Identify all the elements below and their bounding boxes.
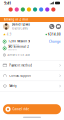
staticText: 4.9 [7, 33, 12, 36]
staticText: $314.00 [48, 33, 61, 36]
staticText: San Francisco [8, 43, 19, 45]
button[interactable]: Nearby [38, 6, 44, 13]
staticText: 9:41 [4, 0, 11, 6]
staticText: Payment method [9, 64, 32, 67]
button[interactable]: Contact support [0, 71, 64, 81]
staticText: 1280 Mission St [8, 39, 30, 43]
button[interactable]: Saved [26, 6, 32, 13]
button[interactable]: Favourites [14, 6, 20, 13]
button[interactable]: Safety [0, 81, 64, 91]
button[interactable]: Payment method [0, 60, 64, 70]
staticText: Change [49, 40, 61, 43]
button[interactable]: Change [49, 40, 61, 43]
staticText: Daniel Lewis [12, 23, 30, 26]
staticText: Arrives 9:58 AM [7, 53, 29, 57]
staticText: Departures [8, 49, 17, 50]
staticText: Cancel ride [12, 107, 29, 111]
button[interactable]: Call driver [49, 24, 54, 29]
staticText: Toyota Camry [12, 27, 28, 30]
staticText: SFO Terminal 2 [8, 45, 29, 48]
button[interactable]: Home [8, 6, 14, 13]
button[interactable]: Cancel ride [3, 104, 61, 114]
button[interactable]: Recent [32, 6, 38, 13]
button[interactable]: Airport [50, 6, 56, 13]
staticText: Contact support [9, 74, 31, 77]
staticText: Safety [9, 84, 16, 88]
button[interactable]: More [44, 6, 50, 13]
staticText: Arriving in 2 min [3, 18, 28, 21]
button[interactable]: Work [20, 6, 26, 13]
button[interactable]: Message driver [56, 24, 61, 29]
